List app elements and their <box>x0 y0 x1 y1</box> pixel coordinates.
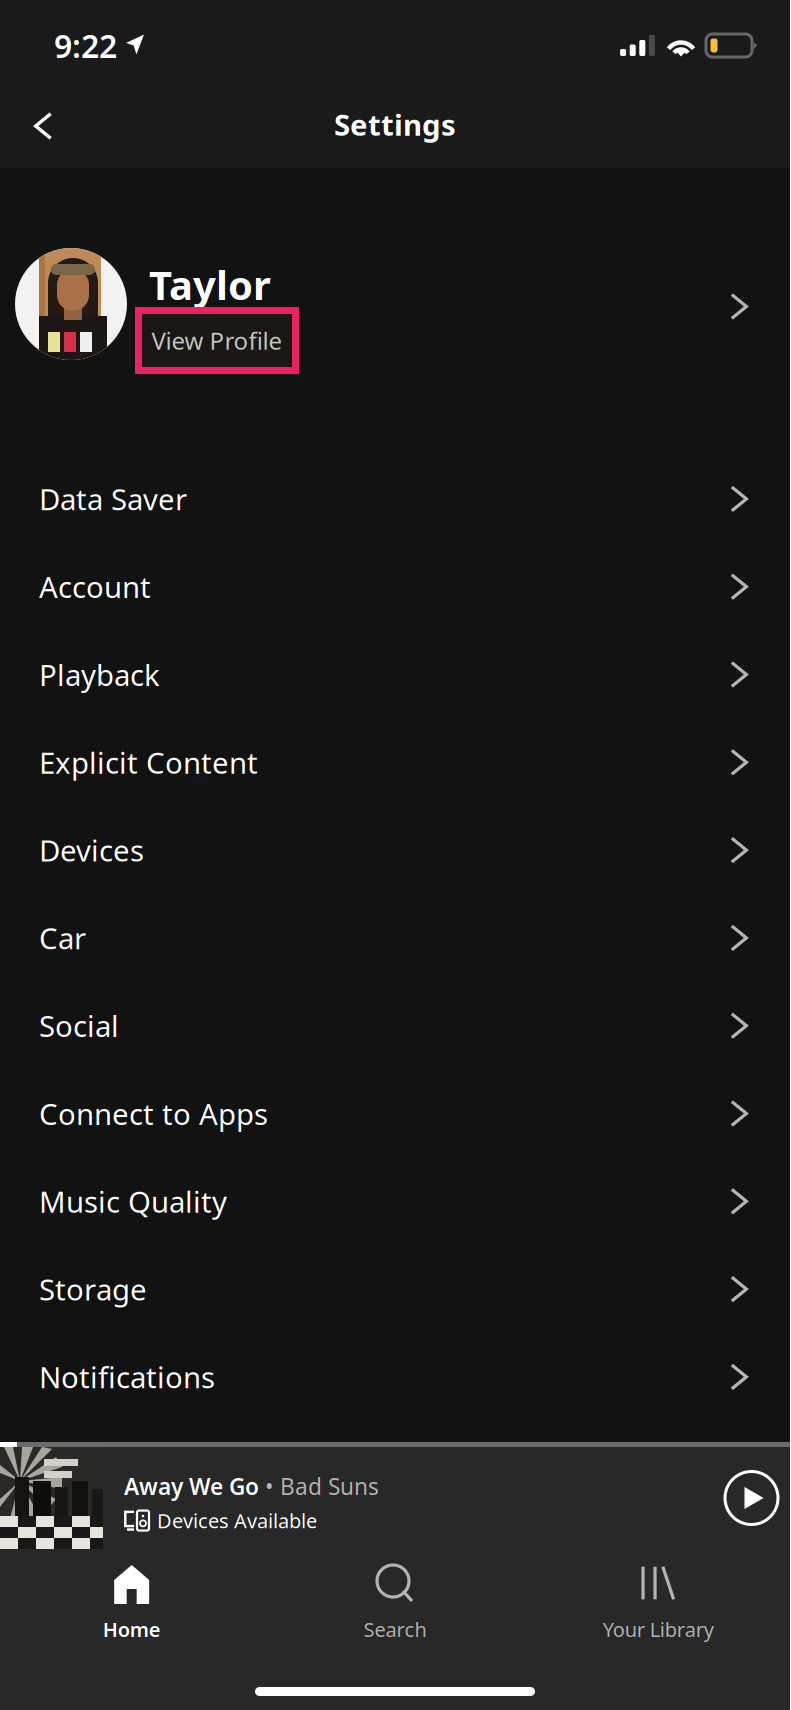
button[interactable]: Taylor <box>0 168 790 455</box>
staticText: Notifications <box>39 1357 215 1396</box>
staticText: Settings <box>334 105 456 144</box>
button[interactable]: Playback <box>0 631 790 718</box>
staticText: Home <box>103 1616 161 1643</box>
staticText: Data Saver <box>39 479 187 518</box>
button[interactable]: Music Quality <box>0 1157 790 1245</box>
button[interactable]: Away We Go <box>0 1447 790 1549</box>
button[interactable]: Devices <box>0 806 790 894</box>
staticText: Explicit Content <box>39 743 258 782</box>
button[interactable]: Notifications <box>0 1333 790 1421</box>
staticText: Taylor <box>149 258 271 311</box>
staticText: Search <box>363 1616 426 1643</box>
button[interactable]: Explicit Content <box>0 718 790 806</box>
button[interactable]: Social <box>0 982 790 1070</box>
staticText: Away We Go <box>124 1471 265 1501</box>
button[interactable]: Data Saver <box>0 455 790 543</box>
staticText: Social <box>39 1006 119 1045</box>
staticText: Music Quality <box>39 1182 227 1221</box>
staticText: Connect to Apps <box>39 1094 268 1133</box>
button[interactable]: Home <box>0 1565 263 1643</box>
staticText: Devices <box>39 831 144 870</box>
staticText: View Profile <box>151 325 282 356</box>
staticText: Playback <box>39 655 160 694</box>
button[interactable]: Account <box>0 543 790 631</box>
staticText: • Bad Suns <box>265 1471 379 1501</box>
staticText: Your Library <box>603 1616 714 1643</box>
button[interactable]: Back <box>0 91 74 149</box>
staticText: Devices Available <box>157 1507 317 1534</box>
button[interactable]: Connect to Apps <box>0 1070 790 1157</box>
staticText: 9:22 <box>54 24 117 67</box>
staticText: Storage <box>39 1270 147 1309</box>
staticText: Car <box>39 918 86 957</box>
button[interactable]: Your Library <box>527 1565 790 1643</box>
staticText: Account <box>39 567 151 606</box>
button[interactable]: Car <box>0 894 790 982</box>
button[interactable]: Storage <box>0 1245 790 1333</box>
button[interactable]: Search <box>263 1565 527 1643</box>
